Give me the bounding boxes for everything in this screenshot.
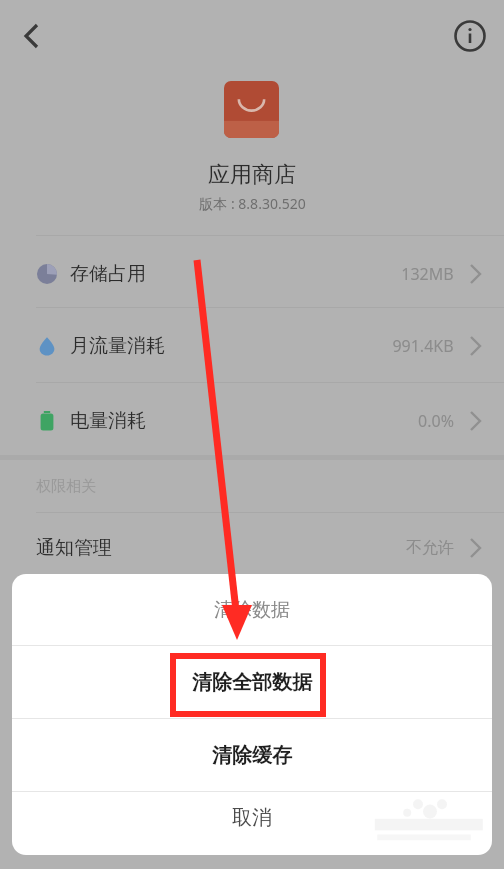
staticText: 清除全部数据 <box>192 670 312 695</box>
button[interactable]: 清除缓存 <box>12 719 492 791</box>
button[interactable]: 电量消耗 <box>0 388 504 454</box>
staticText: 版本 : 8.8.30.520 <box>199 194 306 213</box>
staticText: 132MB <box>401 263 454 285</box>
staticText: 991.4KB <box>392 335 454 357</box>
button[interactable]: 通知管理 <box>0 518 504 578</box>
button[interactable]: Back <box>8 13 54 59</box>
staticText: 清除数据 <box>214 598 290 622</box>
button[interactable]: 取消 <box>12 792 492 855</box>
staticText: 权限相关 <box>36 477 96 496</box>
button[interactable]: 月流量消耗 <box>0 313 504 379</box>
staticText: 取消 <box>232 805 272 830</box>
staticText: 0.0% <box>418 410 454 432</box>
staticText: 存储占用 <box>70 262 146 286</box>
staticText: 清除缓存 <box>212 743 292 768</box>
button[interactable]: 清除全部数据 <box>12 646 492 718</box>
staticText: 应用商店 <box>208 161 296 189</box>
staticText: 不允许 <box>406 538 454 558</box>
staticText: 月流量消耗 <box>70 334 165 358</box>
button[interactable]: App info <box>447 13 493 59</box>
staticText: 通知管理 <box>36 536 112 560</box>
button[interactable]: 存储占用 <box>0 241 504 307</box>
staticText: 电量消耗 <box>70 409 146 433</box>
